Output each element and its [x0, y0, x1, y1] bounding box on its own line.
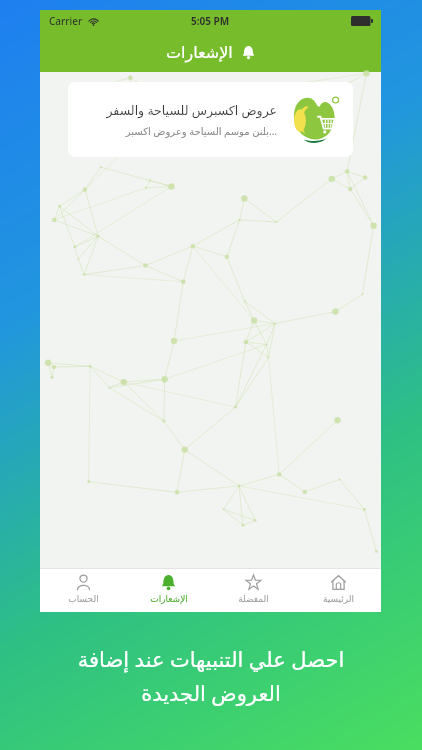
button[interactable]: عروض اكسبرس للسياحة والسفر: [68, 82, 353, 157]
button[interactable]: الإشعارات: [126, 569, 211, 612]
staticText: الإشعارات: [150, 594, 188, 604]
staticText: العروض الجديدة: [24, 679, 398, 708]
staticText: الرئيسية: [323, 594, 354, 604]
staticText: احصل علي التنبيهات عند إضافة: [24, 645, 398, 674]
staticText: المفضلة: [238, 594, 269, 604]
staticText: عروض اكسبرس للسياحة والسفر: [106, 102, 277, 119]
staticText: الحساب: [68, 594, 99, 604]
button[interactable]: الحساب: [40, 569, 126, 612]
staticText: بلنن موسم السياحة وعروض اكسبر...: [125, 124, 277, 138]
button[interactable]: الرئيسية: [296, 569, 381, 612]
button[interactable]: المفضلة: [211, 569, 296, 612]
staticText: Carrier: [49, 14, 83, 28]
staticText: 5:05 PM: [191, 14, 230, 28]
staticText: الإشعارات: [166, 43, 233, 62]
